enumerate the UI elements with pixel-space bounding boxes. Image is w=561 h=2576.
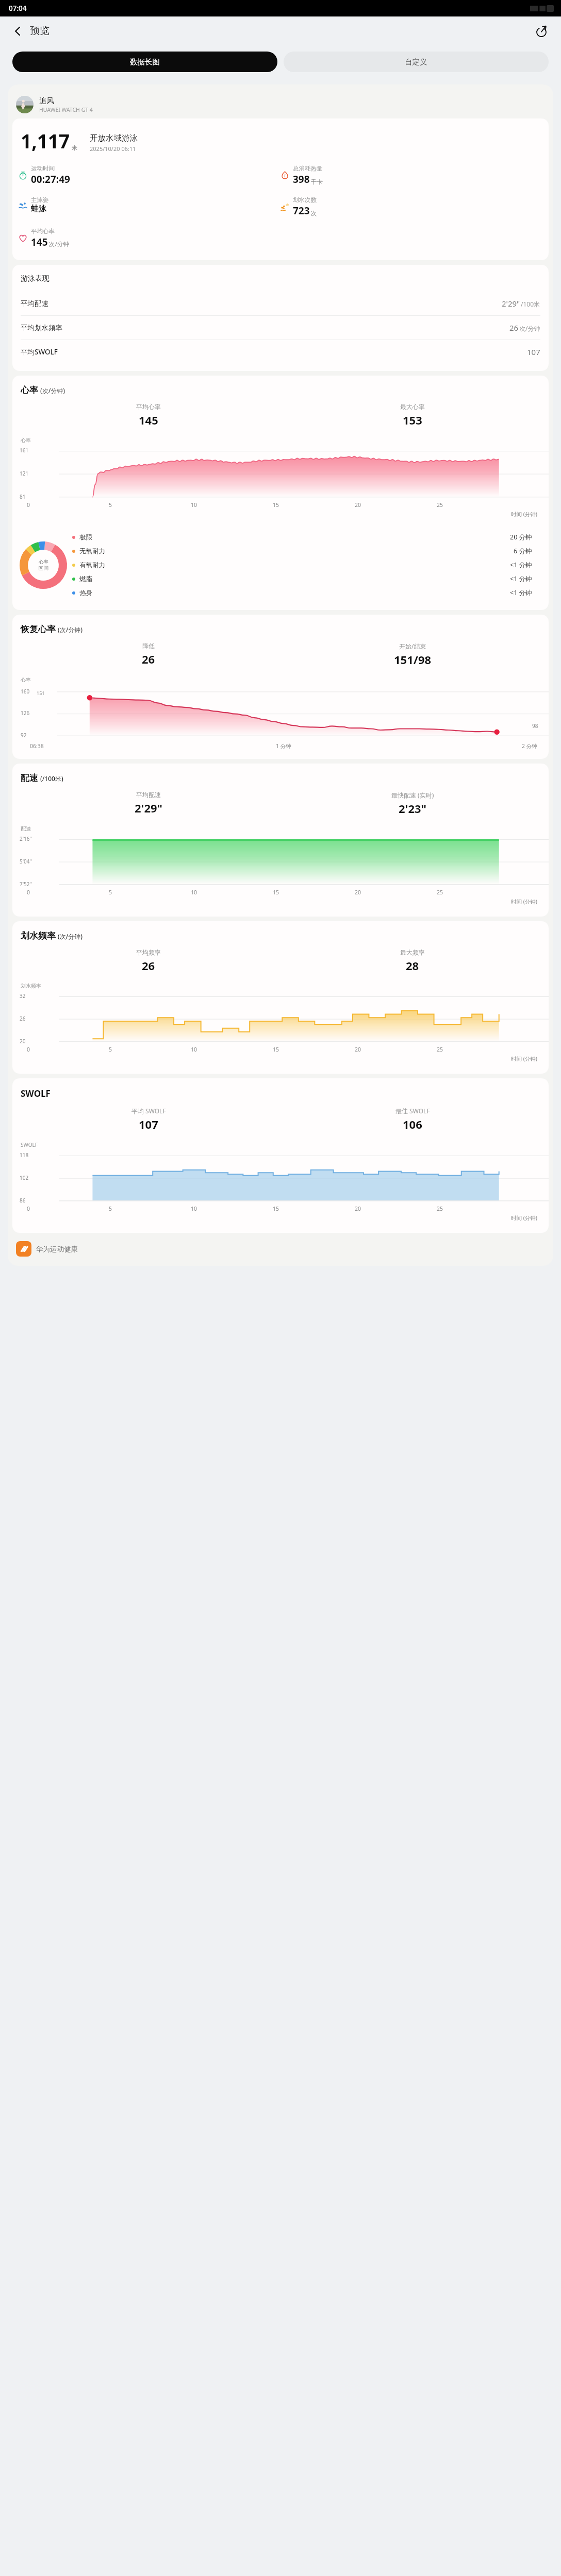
staticText: SWOLF [21, 1088, 51, 1099]
staticText: 5 [109, 1205, 112, 1212]
staticText: 121 [20, 470, 29, 477]
staticText: 15 [273, 1205, 279, 1212]
staticText: 0 [27, 501, 30, 509]
staticText: 恢复心率 [21, 624, 56, 635]
staticText: (次/分钟) [40, 386, 65, 395]
staticText: 心率 [39, 559, 48, 565]
staticText: 10 [191, 501, 197, 509]
staticText: 25 [437, 889, 443, 896]
staticText: 心率 [21, 676, 31, 683]
staticText: 时间 (分钟) [12, 511, 537, 518]
staticText: 7'52" [20, 880, 32, 888]
staticText: 15 [273, 889, 279, 896]
staticText: 26 [142, 651, 155, 667]
staticText: HUAWEI WATCH GT 4 [39, 106, 93, 113]
staticText: 00:27:49 [31, 173, 70, 186]
staticText: 追风 [39, 96, 54, 105]
staticText: 时间 (分钟) [12, 898, 537, 905]
staticText: 区间 [39, 565, 48, 571]
staticText: /100米 [521, 300, 540, 308]
staticText: 蛙泳 [31, 204, 46, 214]
staticText: 161 [20, 447, 29, 454]
staticText: 20 [355, 889, 361, 896]
staticText: 预览 [30, 25, 49, 37]
staticText: 心率 [21, 437, 31, 444]
staticText: 0 [27, 1046, 30, 1053]
staticText: 10 [191, 889, 197, 896]
staticText: 极限 [79, 533, 92, 541]
staticText: (次/分钟) [58, 932, 83, 940]
staticText: 106 [403, 1116, 422, 1132]
staticText: 98 [532, 722, 538, 730]
staticText: 0 [27, 1205, 30, 1212]
staticText: 开始/结束 [399, 642, 426, 650]
staticText: 无氧耐力 [79, 547, 105, 555]
staticText: 平均配速 [21, 299, 48, 308]
staticText: 26 [509, 323, 519, 333]
staticText: 平均划水频率 [21, 324, 62, 332]
staticText: 数据长图 [130, 57, 160, 66]
staticText: 平均频率 [136, 948, 161, 956]
staticText: 20 [20, 1038, 26, 1045]
staticText: 81 [20, 493, 26, 500]
staticText: 92 [21, 732, 27, 739]
button[interactable]: 自定义 [284, 52, 549, 72]
staticText: 2'16" [20, 835, 32, 842]
staticText: 总消耗热量 [293, 165, 323, 172]
staticText: 运动时间 [31, 165, 55, 172]
staticText: 次 [311, 210, 317, 217]
staticText: 25 [437, 1205, 443, 1212]
staticText: 2025/10/20 06:11 [90, 145, 136, 152]
staticText: 最快配速 (实时) [391, 791, 434, 799]
staticText: 米 [72, 144, 77, 151]
staticText: 次/分钟 [519, 324, 540, 332]
staticText: 时间 (分钟) [12, 1214, 537, 1222]
staticText: 5 [109, 1046, 112, 1053]
staticText: 平均 SWOLF [131, 1107, 166, 1115]
staticText: 26 [20, 1015, 26, 1022]
staticText: 15 [273, 1046, 279, 1053]
staticText: 10 [191, 1205, 197, 1212]
staticText: 2'29" [135, 800, 163, 816]
staticText: 平均SWOLF [21, 347, 58, 357]
staticText: 自定义 [405, 57, 427, 66]
button[interactable]: 数据长图 [12, 52, 277, 72]
staticText: 20 [355, 1046, 361, 1053]
staticText: 主泳姿 [31, 196, 49, 204]
staticText: 2 分钟 [522, 742, 537, 750]
staticText: 25 [437, 1046, 443, 1053]
staticText: 15 [273, 501, 279, 509]
staticText: 153 [403, 412, 422, 428]
staticText: 06:38 [30, 742, 44, 750]
staticText: 最大心率 [400, 403, 425, 411]
staticText: 145 [139, 412, 158, 428]
staticText: 20 分钟 [510, 533, 532, 541]
staticText: 151 [37, 690, 45, 696]
staticText: 25 [437, 501, 443, 509]
staticText: 20 [355, 501, 361, 509]
staticText: <1 分钟 [510, 561, 532, 569]
staticText: 6 分钟 [514, 547, 532, 555]
staticText: 26 [142, 958, 155, 973]
staticText: 1,117 [21, 128, 70, 154]
staticText: 1 分钟 [276, 742, 291, 750]
staticText: 32 [20, 992, 26, 999]
staticText: SWOLF [21, 1141, 38, 1148]
staticText: 平均配速 [136, 791, 161, 799]
staticText: 398 [293, 173, 310, 186]
staticText: 最大频率 [400, 948, 425, 956]
button[interactable]: Back [7, 21, 28, 41]
staticText: 次/分钟 [49, 240, 69, 248]
staticText: <1 分钟 [510, 574, 532, 583]
staticText: 游泳表现 [21, 274, 49, 283]
staticText: 时间 (分钟) [12, 1055, 537, 1062]
staticText: 平均心率 [31, 228, 55, 235]
staticText: 5 [109, 501, 112, 509]
staticText: 102 [20, 1174, 29, 1181]
staticText: 5 [109, 889, 112, 896]
staticText: (次/分钟) [58, 625, 83, 634]
button[interactable]: Share [531, 21, 552, 41]
staticText: (/100米) [40, 774, 63, 783]
staticText: 86 [20, 1197, 26, 1204]
staticText: 划水频率 [21, 930, 56, 941]
